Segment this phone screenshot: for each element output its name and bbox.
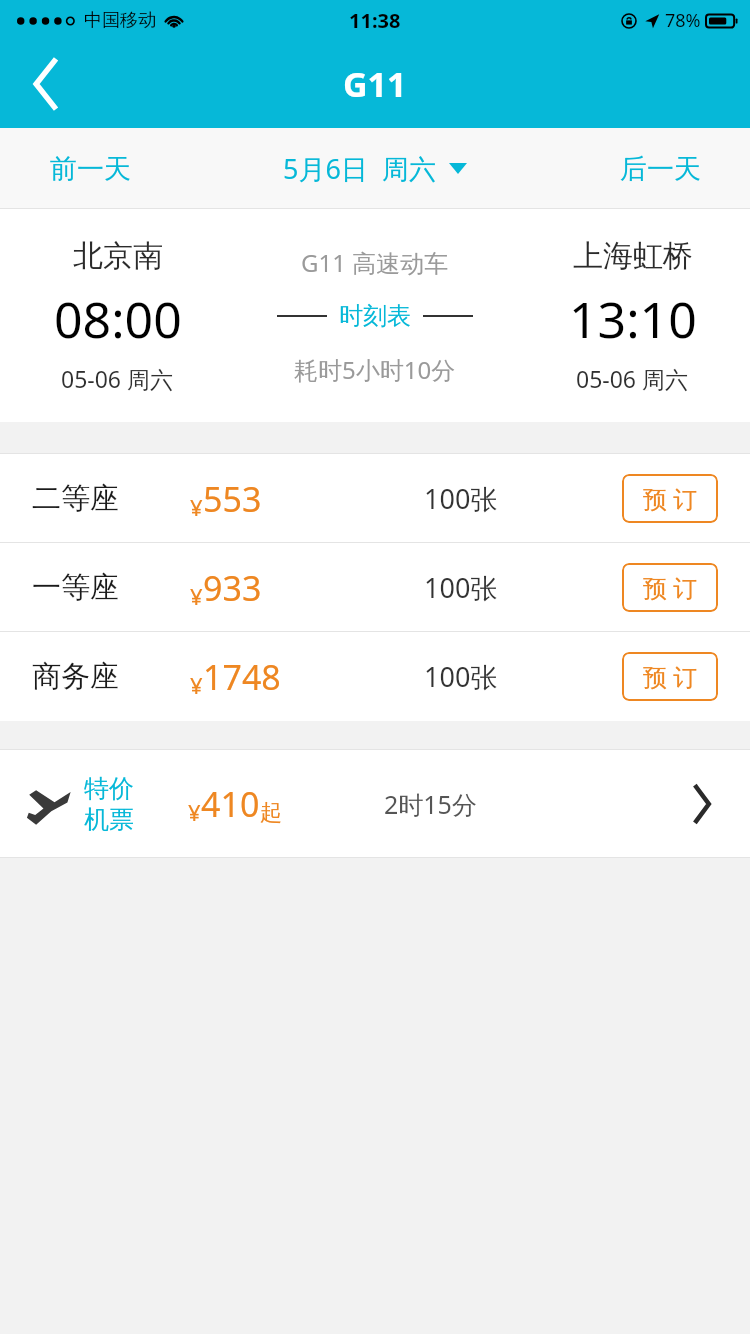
button[interactable]: 后一天 [570,128,750,209]
staticText: 5月6日 周六 [283,150,436,187]
button[interactable]: 预 订 [622,563,718,612]
button[interactable]: 5月6日 周六 [267,128,483,209]
staticText: ¥ [190,581,203,611]
staticText: ¥ [188,797,201,827]
staticText: 预 订 [643,482,698,515]
staticText: 11:38 [349,7,401,34]
staticText: 553 [203,476,262,522]
staticText: 商务座 [32,658,119,695]
staticText: 起 [260,799,282,827]
staticText: 时刻表 [339,301,411,331]
staticText: G11 [343,61,407,107]
staticText: 410 [201,781,260,827]
staticText: 2时15分 [384,787,477,821]
staticText: 耗时5小时10分 [294,353,456,386]
staticText: G11 高速动车 [301,246,449,279]
staticText: 100张 [424,569,498,606]
staticText: 933 [203,565,262,611]
staticText: 100张 [424,658,498,695]
staticText: 05-06 周六 [61,363,174,394]
staticText: 预 订 [643,660,698,693]
button[interactable]: 前一天 [0,128,180,209]
staticText: 预 订 [643,571,698,604]
staticText: 机票 [84,804,134,835]
staticText: 后一天 [620,152,701,186]
button[interactable]: 特价 [0,750,750,858]
staticText: 78% [665,8,701,33]
staticText: 上海虹桥 [573,237,693,275]
staticText: 1748 [203,654,281,700]
staticText: 05-06 周六 [576,363,689,394]
other: More [692,786,712,822]
button[interactable]: 预 订 [622,652,718,701]
staticText: 二等座 [32,480,119,517]
staticText: 北京南 [73,237,163,275]
staticText: ¥ [190,670,203,700]
staticText: 13:10 [569,285,697,353]
staticText: 前一天 [50,152,131,186]
staticText: 100张 [424,480,498,517]
staticText: 一等座 [32,569,119,606]
button[interactable]: 时刻表 [277,301,473,331]
button[interactable]: Back [0,40,92,128]
staticText: 中国移动 [84,9,156,32]
staticText: ¥ [190,492,203,522]
staticText: 特价 [84,773,134,804]
staticText: 08:00 [54,285,182,353]
button[interactable]: 预 订 [622,474,718,523]
